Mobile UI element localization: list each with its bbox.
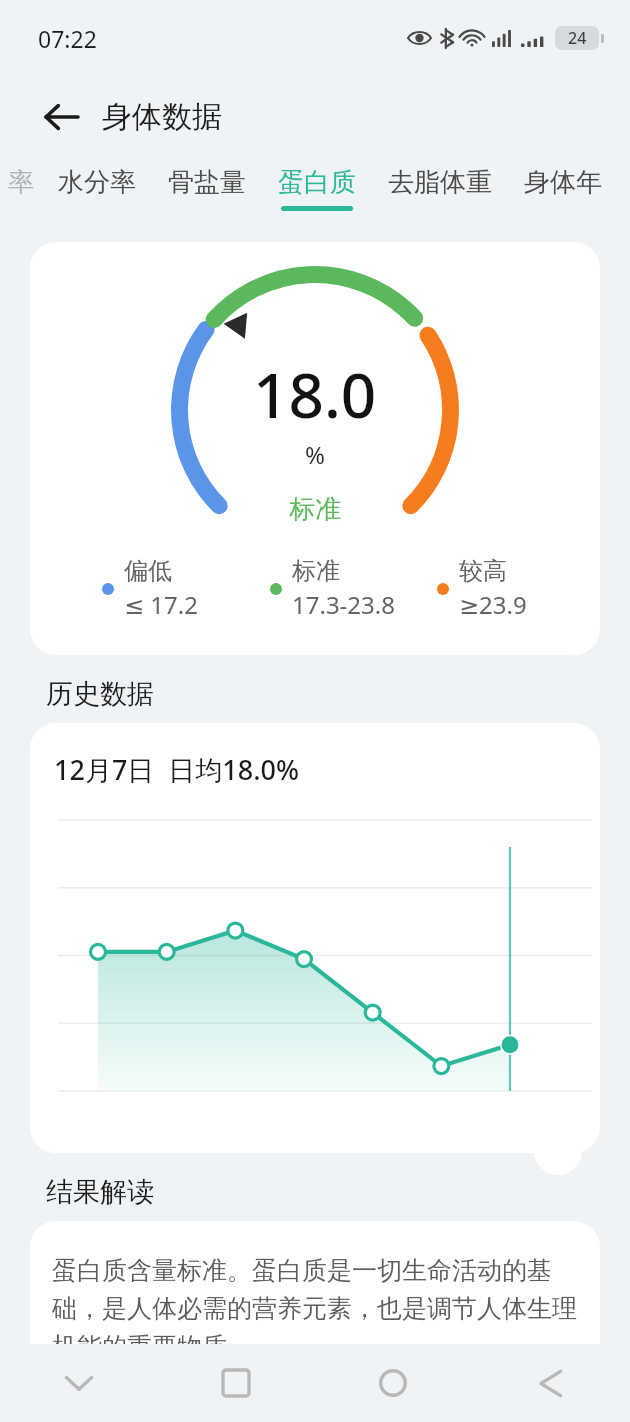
staticText: 标准 bbox=[292, 556, 340, 586]
staticText: 蛋白质 bbox=[278, 166, 356, 199]
button[interactable]: 率 bbox=[0, 158, 42, 230]
button[interactable]: Scrub handle bbox=[534, 1127, 582, 1175]
button[interactable]: Back bbox=[34, 90, 88, 144]
button[interactable]: Back bbox=[472, 1344, 630, 1422]
button[interactable]: 去脂体重 bbox=[372, 158, 508, 230]
staticText: 结果解读 bbox=[46, 1175, 154, 1209]
staticText: 水分率 bbox=[58, 166, 136, 199]
staticText: 历史数据 bbox=[46, 677, 154, 711]
button[interactable]: 蛋白质 bbox=[262, 158, 372, 230]
staticText: 偏低 bbox=[124, 556, 172, 586]
staticText: 率 bbox=[8, 166, 34, 199]
staticText: 骨盐量 bbox=[168, 166, 246, 199]
staticText: ≤ 17.2 bbox=[124, 588, 198, 621]
staticText: 标准 bbox=[289, 493, 341, 526]
staticText: 去脂体重 bbox=[388, 166, 492, 199]
staticText: 身体数据 bbox=[102, 98, 222, 136]
staticText: 较高 bbox=[459, 556, 507, 586]
staticText: 24 bbox=[568, 27, 587, 49]
button[interactable]: Home bbox=[314, 1344, 472, 1422]
staticText: 身体年龄 bbox=[524, 166, 614, 199]
staticText: % bbox=[305, 438, 325, 471]
staticText: 07:22 bbox=[38, 23, 97, 54]
staticText: 蛋白质含量标准。蛋白质是一切生命活动的基础，是人体必需的营养元素，也是调节人体生… bbox=[52, 1255, 578, 1351]
staticText: 17.3-23.8 bbox=[292, 588, 395, 621]
button[interactable]: 身体年龄 bbox=[508, 158, 630, 230]
staticText: 12月7日 日均18.0% bbox=[54, 751, 300, 788]
staticText: ≥23.9 bbox=[459, 588, 527, 621]
button[interactable]: 水分率 bbox=[42, 158, 152, 230]
button[interactable]: Hide keyboard bbox=[0, 1344, 157, 1422]
button[interactable]: 骨盐量 bbox=[152, 158, 262, 230]
button[interactable]: Recents bbox=[157, 1344, 314, 1422]
staticText: 18.0 bbox=[253, 352, 377, 436]
